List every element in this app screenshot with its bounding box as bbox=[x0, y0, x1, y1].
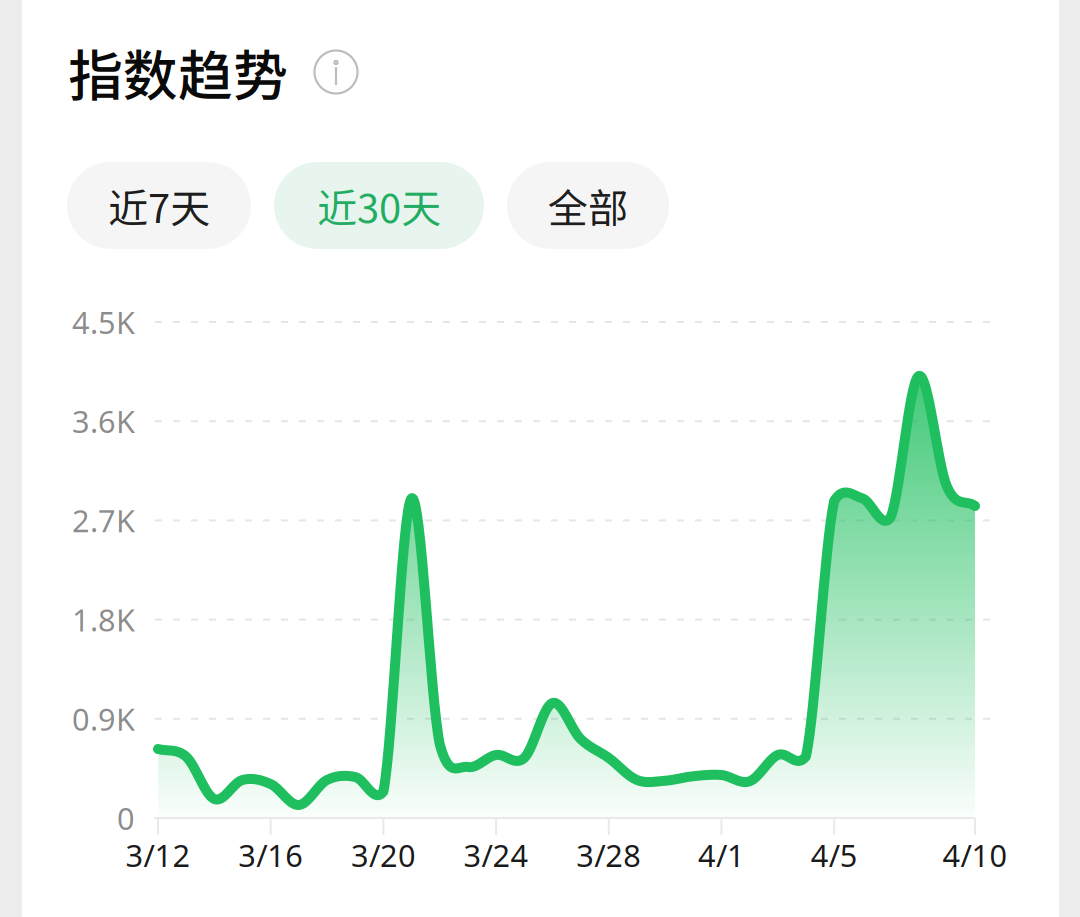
staticText: 近7天 bbox=[108, 176, 210, 234]
staticText: 3/16 bbox=[238, 834, 303, 876]
staticText: 4/10 bbox=[942, 834, 1007, 876]
staticText: 1.8K bbox=[72, 599, 135, 640]
staticText: 2.7K bbox=[72, 499, 135, 541]
staticText: 3.6K bbox=[72, 400, 135, 442]
staticText: 4/5 bbox=[811, 834, 858, 876]
staticText: 4.5K bbox=[72, 301, 135, 343]
button[interactable]: 近30天 bbox=[274, 162, 484, 249]
button[interactable]: 近7天 bbox=[67, 162, 251, 249]
staticText: 近30天 bbox=[317, 176, 441, 234]
staticText: 3/20 bbox=[351, 834, 416, 876]
staticText: 3/28 bbox=[576, 834, 641, 876]
staticText: 3/12 bbox=[125, 834, 190, 876]
staticText: 0 bbox=[117, 797, 135, 839]
staticText: 指数趋势 bbox=[68, 32, 288, 112]
button[interactable]: 说明 bbox=[312, 48, 360, 96]
staticText: 0.9K bbox=[72, 698, 135, 740]
button[interactable]: 全部 bbox=[507, 162, 669, 249]
staticText: 全部 bbox=[548, 176, 628, 234]
staticText: 3/24 bbox=[464, 834, 529, 876]
staticText: 4/1 bbox=[698, 834, 745, 876]
